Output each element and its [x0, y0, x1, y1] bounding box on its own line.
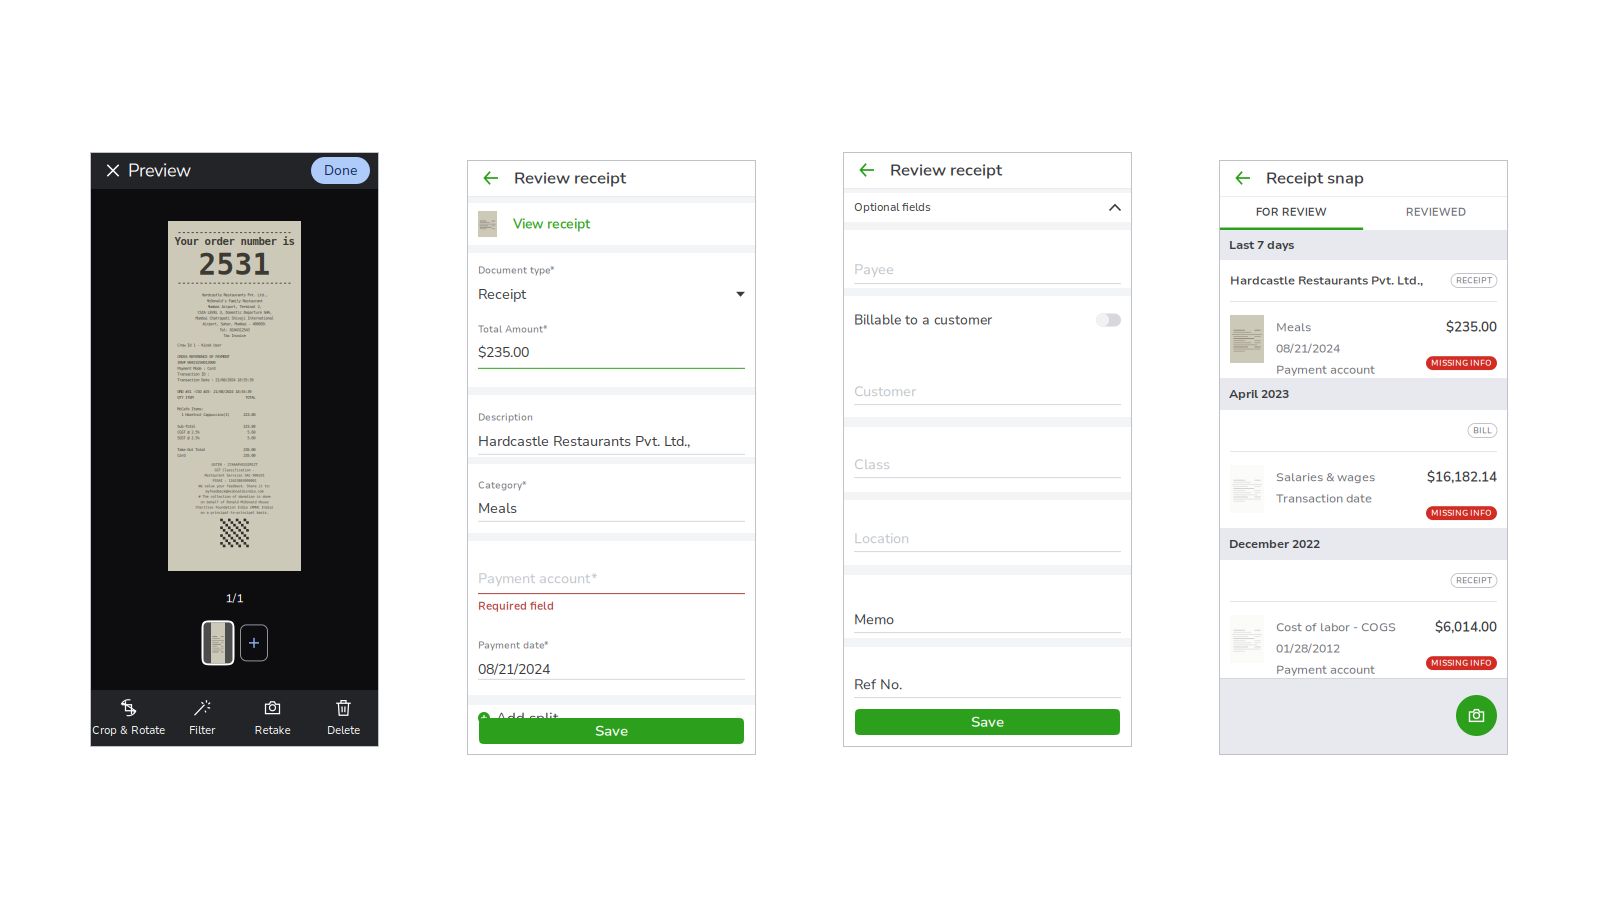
button[interactable]: Memo — [843, 575, 1132, 638]
staticText: View receipt — [513, 215, 590, 233]
button[interactable]: Location — [843, 500, 1132, 565]
button[interactable]: Class — [843, 427, 1132, 492]
button[interactable]: Back — [1226, 162, 1260, 194]
staticText: GST Classification - — [214, 468, 254, 472]
staticText: Optional fields — [854, 200, 931, 215]
staticText: Crop & Rotate — [92, 723, 165, 738]
button[interactable]: Save — [479, 718, 744, 744]
button[interactable]: Close — [98, 154, 128, 186]
button[interactable]: Add page — [240, 625, 267, 661]
staticText: Class — [854, 455, 890, 474]
staticText: Tel: 8104312543 — [219, 328, 249, 332]
button[interactable]: Category* — [467, 464, 756, 533]
staticText: 1/1 — [225, 590, 243, 606]
staticText: Filter — [189, 723, 215, 738]
staticText: REVIEWED — [1406, 205, 1466, 219]
staticText: Cost of labor - COGS — [1276, 619, 1396, 635]
staticText: Transaction ID : — [177, 372, 209, 376]
staticText: Customer — [854, 382, 916, 401]
staticText: myfeedback@mcdonaldsindia.com — [205, 489, 263, 493]
button[interactable]: Ref No. — [843, 647, 1132, 704]
staticText: Charities Foundation India (RMHC India) — [195, 505, 273, 509]
button[interactable]: Payment date* — [467, 637, 756, 681]
button[interactable]: Payee — [843, 230, 1132, 288]
staticText: on behalf of Ronald McDonald House — [200, 500, 268, 504]
staticText: April 2023 — [1229, 386, 1289, 402]
staticText: INV# 00423250012000 — [177, 360, 215, 365]
button[interactable]: Capture receipt — [1452, 691, 1501, 740]
button[interactable]: Back — [850, 154, 884, 186]
staticText: Hardcastle Restaurants Pvt. Ltd., — [1230, 272, 1423, 289]
button[interactable]: Customer — [843, 344, 1132, 417]
staticText: CROSS REFERENCE OF PAYMENT — [177, 354, 229, 359]
staticText: Done — [324, 161, 357, 180]
staticText: Your order number is — [174, 235, 294, 247]
staticText: Restaurant Services SAC-996331 — [204, 473, 264, 477]
staticText: Document type* — [478, 264, 554, 277]
staticText: BILL — [1473, 425, 1492, 436]
staticText: McCafe Items: — [177, 407, 203, 411]
staticText: $235.00 — [478, 343, 529, 362]
button[interactable]: RECEIPT — [1219, 560, 1508, 678]
staticText: Crew Id 1 - Kiosk User — [177, 343, 221, 347]
staticText: Last 7 days — [1229, 237, 1294, 253]
button[interactable]: Hardcastle Restaurants Pvt. Ltd., — [1219, 260, 1508, 378]
button[interactable]: FOR REVIEW — [1219, 197, 1363, 230]
staticText: FSSAI : 11623863000001 — [212, 479, 256, 483]
button[interactable]: Total Amount* — [467, 313, 756, 387]
staticText: # The collection of donation is done — [198, 495, 270, 499]
staticText: Retake — [254, 723, 290, 738]
staticText: Transaction Date : 21/08/2024 18:55:39 — [177, 378, 253, 382]
button[interactable]: Description — [467, 395, 756, 457]
button[interactable]: Billable to a customer — [843, 296, 1132, 344]
staticText: FOR REVIEW — [1256, 205, 1327, 219]
button[interactable]: Save — [855, 709, 1120, 735]
staticText: Required field — [478, 599, 554, 613]
staticText: Review receipt — [514, 167, 626, 189]
staticText: 08/21/2024 — [478, 660, 550, 679]
staticText: RECEIPT — [1456, 275, 1492, 286]
button[interactable]: Retake — [237, 694, 308, 742]
staticText: Sub-Total 223.80 — [177, 424, 255, 429]
staticText: Review receipt — [890, 159, 1002, 181]
staticText: Delete — [327, 723, 360, 738]
staticText: Salaries & wages — [1276, 469, 1375, 485]
staticText: Payment account — [1276, 662, 1375, 678]
staticText: CSIA LEVEL 3, Domestic Departure SHA, — [197, 310, 271, 315]
staticText: Receipt snap — [1266, 167, 1364, 189]
button[interactable]: BILL — [1219, 410, 1508, 528]
button[interactable]: Payment account* — [467, 541, 756, 599]
staticText: CGST @ 2.5% 5.60 — [177, 430, 255, 434]
button[interactable]: Delete — [308, 694, 379, 742]
staticText: Payee — [854, 260, 894, 279]
staticText: $235.00 — [1446, 318, 1497, 336]
staticText: Category* — [478, 479, 526, 492]
staticText: Save — [971, 712, 1004, 732]
staticText: Hardcastle Restaurants Pvt. Ltd., — [478, 432, 690, 451]
staticText: Meals — [1276, 319, 1311, 335]
button[interactable]: Filter — [167, 694, 237, 742]
button[interactable]: Crop & Rotate — [90, 694, 167, 742]
staticText: GSTIN - 27AAAFH3332M1ZT — [211, 463, 257, 467]
staticText: Hardcastle Restaurants Pvt. Ltd., — [201, 293, 267, 297]
staticText: 08/21/2024 — [1276, 340, 1340, 357]
staticText: 1 Hazelnut Cappuccino(1) 223.80 — [177, 412, 255, 417]
staticText: MISSING INFO — [1431, 508, 1492, 519]
staticText: Mumbai Chatrapati Shivaji International — [195, 316, 273, 320]
staticText: Payment account* — [478, 569, 597, 588]
staticText: Memo — [854, 610, 894, 629]
button[interactable]: View receipt — [467, 203, 756, 245]
staticText: Ref No. — [854, 675, 902, 694]
button[interactable]: Optional fields — [843, 193, 1132, 222]
button[interactable]: Done — [311, 157, 370, 184]
staticText: Payment date* — [478, 639, 548, 652]
staticText: Payment account — [1276, 362, 1375, 378]
staticText: Take-Out Total 235.00 — [177, 447, 255, 452]
button[interactable]: Document type* — [467, 253, 756, 313]
button[interactable]: Back — [474, 162, 508, 194]
button[interactable]: REVIEWED — [1363, 197, 1508, 230]
staticText: Billable to a customer — [854, 311, 992, 329]
staticText: We value your feedback. Share it to: — [198, 484, 270, 488]
